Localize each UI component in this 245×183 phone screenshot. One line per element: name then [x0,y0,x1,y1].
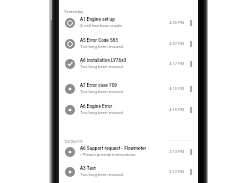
staticText: A6 Installation LY76x3 [80,58,127,63]
staticText: A call has been made [80,23,122,28]
staticText: A6 Support request - Flowmeter [80,146,147,151]
staticText: 4:17 PM [169,61,184,66]
staticText: Too long been missed [80,44,123,49]
staticText: 4:15 PM [169,107,184,112]
button[interactable]: More options [184,100,198,119]
button[interactable]: A5 Error Code 583 [60,34,199,53]
button[interactable]: More options [184,142,198,161]
button[interactable]: A7 Error case 709 [60,79,199,98]
staticText: 4:25 PM [169,20,184,25]
staticText: 2:13 PM [169,149,184,154]
staticText: Too long been missed [80,89,123,94]
button[interactable]: More options [184,54,198,73]
button[interactable]: A1 Engine set up [60,13,199,32]
staticText: A3 Test [80,166,96,171]
staticText: 10/26/19 [64,139,83,144]
staticText: 4:15 PM [169,86,184,91]
button[interactable]: More options [184,79,198,98]
button[interactable]: More options [184,34,198,53]
staticText: Too long been missed [80,110,123,115]
button[interactable]: A6 Installation LY76x3 [60,54,199,73]
button[interactable]: A3 Test [60,162,199,181]
staticText: 2:12 PM [169,169,184,174]
button[interactable]: A6 Engine Error [60,100,199,119]
staticText: A5 Error Code 583 [80,38,118,43]
staticText: • Please provide instructions [80,152,136,157]
staticText: Yesterday [64,9,84,14]
button[interactable]: A6 Support request - Flowmeter [60,142,199,161]
staticText: A1 Engine set up [80,17,115,22]
staticText: A7 Error case 709 [80,83,117,88]
staticText: 4:37 PM [169,41,184,46]
button[interactable]: More options [184,13,198,32]
button[interactable]: More options [184,162,198,181]
staticText: Too long been missed [80,64,123,69]
staticText: A6 Engine Error [80,104,113,109]
staticText: Too long been missed [80,172,123,177]
